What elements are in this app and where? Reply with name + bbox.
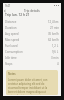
staticText: sectetur adipiscing elit sed do xyxy=(8,82,45,86)
staticText: 21 min xyxy=(50,26,59,30)
staticText: enim ad minim veniam quis nos xyxy=(8,94,47,95)
staticText: eiusmod tempor incididunt ut la xyxy=(8,86,48,90)
button[interactable]: Fuel used xyxy=(3,43,61,49)
button[interactable]: Idle time xyxy=(3,55,61,61)
button[interactable]: Notes xyxy=(6,70,58,95)
button[interactable]: Consumption xyxy=(3,49,61,55)
staticText: Duration xyxy=(5,26,17,30)
staticText: 4 xyxy=(57,62,59,66)
staticText: 3 min xyxy=(51,56,59,60)
staticText: 9:41 xyxy=(5,4,11,8)
button[interactable]: Max speed xyxy=(3,37,61,43)
button[interactable]: Avg speed xyxy=(3,31,61,37)
staticText: 35 km/h xyxy=(48,32,59,36)
button[interactable]: Duration xyxy=(3,25,61,31)
staticText: 1,2 L xyxy=(52,44,59,48)
staticText: Max speed xyxy=(5,38,20,42)
staticText: Consumption xyxy=(5,50,23,54)
staticText: Distance xyxy=(5,20,17,24)
staticText: 62 km/h xyxy=(48,38,59,42)
staticText: Avg speed xyxy=(5,32,19,36)
button[interactable]: Distance xyxy=(3,19,61,25)
staticText: bore et dolore magna aliqua ut xyxy=(8,90,46,94)
staticText: Idle time xyxy=(5,56,17,60)
staticText: Notes xyxy=(8,72,16,76)
staticText: 9,6 L xyxy=(52,50,59,54)
staticText: Stops xyxy=(5,62,13,66)
staticText: Trip details xyxy=(24,9,40,13)
staticText: Trip lun. 12 h 21 xyxy=(5,13,30,17)
staticText: Fuel used xyxy=(5,44,18,48)
staticText: Lorem ipsum dolor sit amet, con xyxy=(8,78,48,82)
button[interactable]: Stops xyxy=(3,61,61,67)
button[interactable]: Back xyxy=(3,9,7,13)
staticText: 12,4 km xyxy=(48,20,59,24)
